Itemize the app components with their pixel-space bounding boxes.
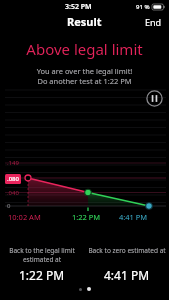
staticText: 4:41 PM <box>104 267 150 283</box>
staticText: .149 <box>7 159 19 167</box>
staticText: Back to zero estimated at <box>88 246 166 255</box>
staticText: 0 <box>7 202 11 210</box>
staticText: 10:02 AM <box>8 212 41 222</box>
staticText: 1:22 PM <box>72 212 101 222</box>
staticText: 91 % <box>136 3 150 11</box>
staticText: 1:22 PM <box>19 267 65 283</box>
staticText: End <box>145 16 162 27</box>
staticText: 4:41 PM <box>119 212 148 222</box>
staticText: .040 <box>7 189 19 197</box>
button[interactable]: End <box>138 13 169 30</box>
staticText: Back to the legal limit estimated at <box>9 246 75 264</box>
staticText: Result <box>67 14 102 29</box>
staticText: Above legal limit <box>0 39 169 59</box>
staticText: 3:52 PM <box>65 2 92 12</box>
button[interactable]: Info <box>144 88 164 108</box>
staticText: You are over the legal limit! Do another… <box>0 66 169 86</box>
staticText: .080 <box>7 175 19 183</box>
